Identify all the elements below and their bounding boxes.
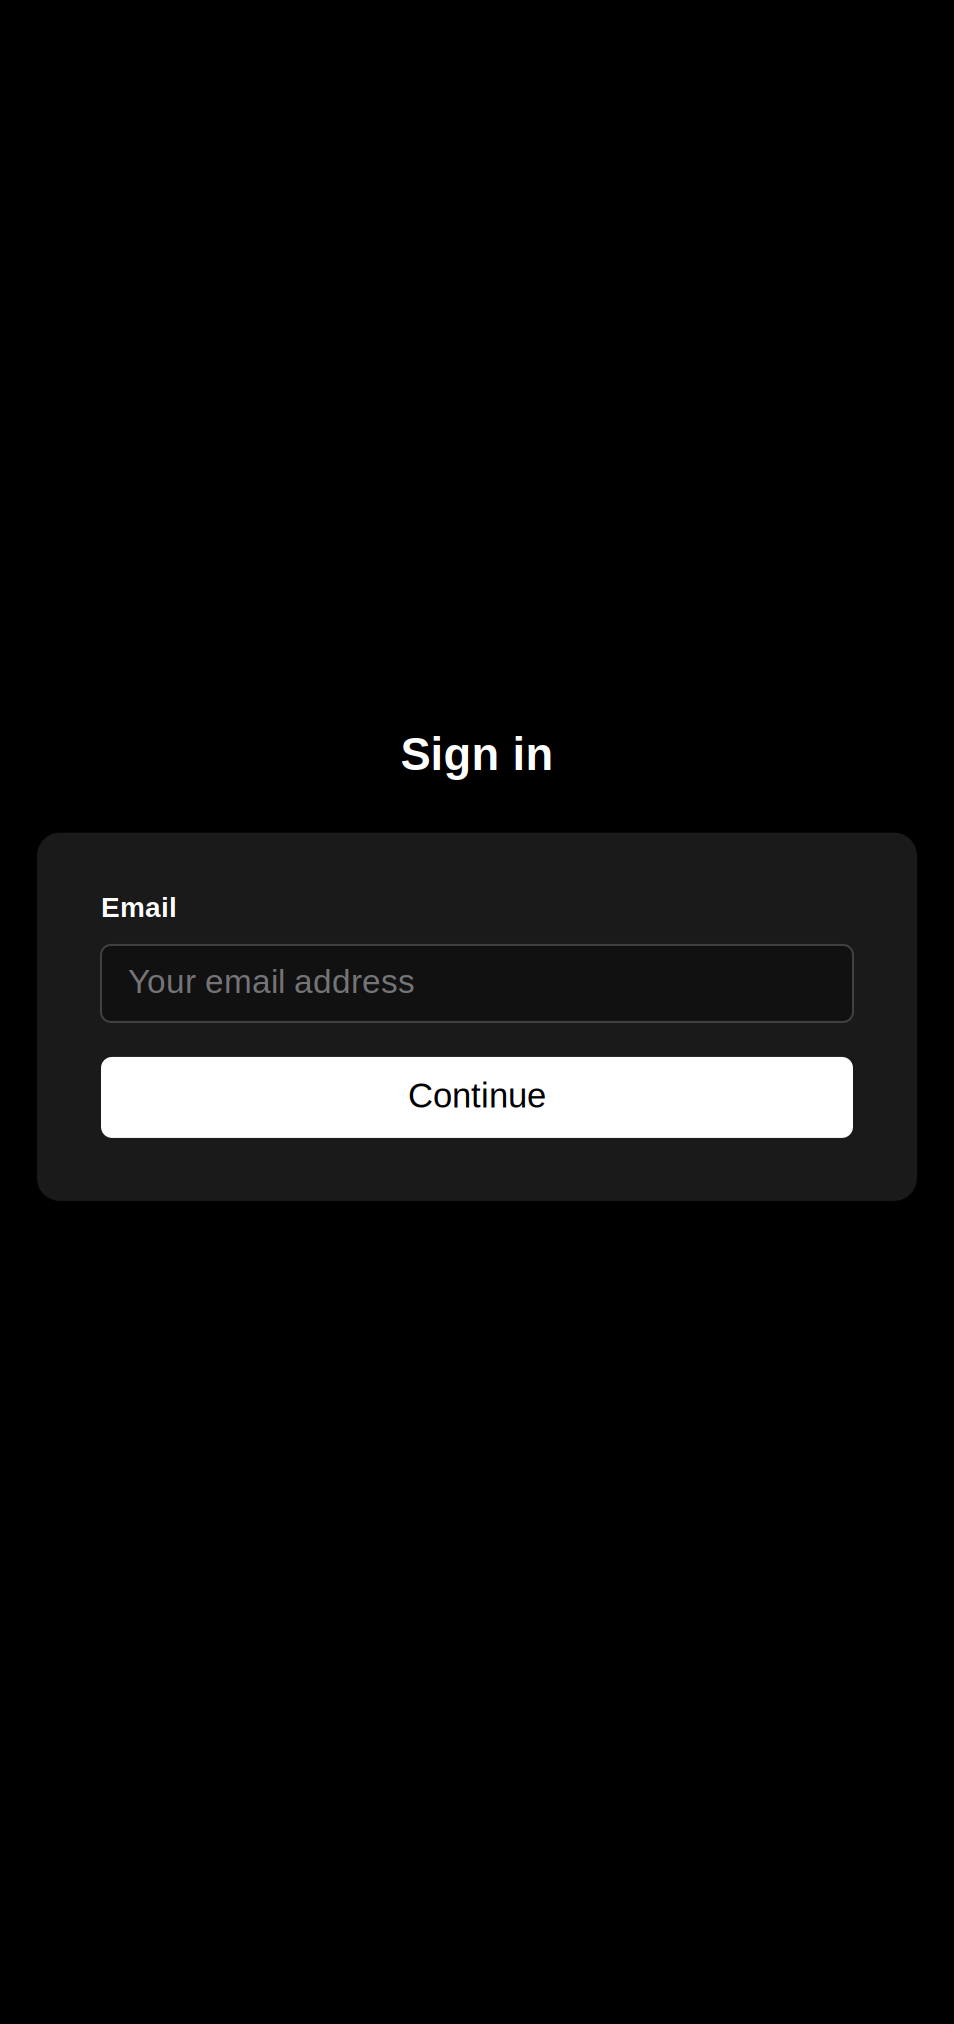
button[interactable]: Continue [101, 1057, 853, 1138]
staticText: Your email address [128, 963, 415, 1000]
staticText: Sign in [400, 729, 553, 780]
button[interactable]: Email address [101, 945, 853, 1022]
staticText: Email [101, 892, 177, 923]
staticText: Continue [408, 1076, 546, 1115]
